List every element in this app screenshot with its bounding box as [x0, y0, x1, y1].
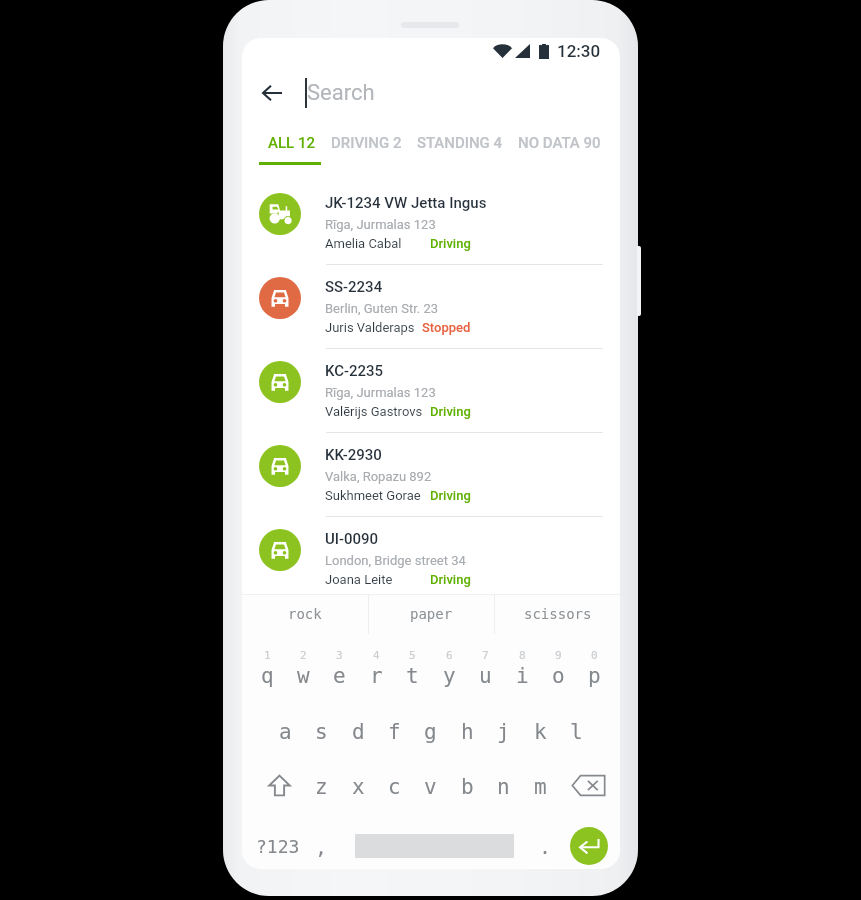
- staticText: Stopped: [422, 320, 471, 335]
- staticText: Valka, Ropazu 892: [325, 469, 432, 484]
- staticText: t: [406, 664, 419, 688]
- staticText: f: [388, 720, 401, 744]
- staticText: 2: [300, 649, 307, 662]
- button[interactable]: SS-2234: [242, 273, 620, 357]
- button[interactable]: ALL 12: [268, 134, 316, 152]
- staticText: 5: [409, 649, 416, 662]
- button[interactable]: 5: [394, 640, 430, 696]
- staticText: Joana Leite: [325, 572, 393, 587]
- button[interactable]: z: [303, 764, 339, 810]
- staticText: 8: [519, 649, 526, 662]
- button[interactable]: NO DATA 90: [518, 134, 601, 152]
- button[interactable]: j: [485, 709, 521, 755]
- button[interactable]: scissors: [495, 594, 620, 634]
- button[interactable]: Back: [252, 73, 292, 113]
- button[interactable]: g: [412, 709, 448, 755]
- staticText: Driving: [430, 572, 471, 587]
- button[interactable]: f: [376, 709, 412, 755]
- button[interactable]: KC-2235: [242, 357, 620, 441]
- staticText: Search: [307, 80, 375, 106]
- button[interactable]: v: [412, 764, 448, 810]
- button[interactable]: 8: [504, 640, 540, 696]
- staticText: Sukhmeet Gorae: [325, 488, 421, 503]
- button[interactable]: Shift: [261, 762, 297, 808]
- staticText: 7: [482, 649, 489, 662]
- button[interactable]: Symbols: [252, 826, 304, 866]
- staticText: r: [370, 664, 383, 688]
- button[interactable]: 9: [540, 640, 576, 696]
- button[interactable]: Enter: [560, 826, 618, 866]
- staticText: Amelia Cabal: [325, 236, 402, 251]
- button[interactable]: m: [522, 764, 558, 810]
- staticText: o: [552, 664, 565, 688]
- staticText: q: [261, 664, 274, 688]
- button[interactable]: d: [340, 709, 376, 755]
- button[interactable]: 1: [249, 640, 285, 696]
- button[interactable]: JK-1234 VW Jetta Ingus: [242, 189, 620, 273]
- staticText: n: [497, 775, 510, 799]
- button[interactable]: 3: [321, 640, 357, 696]
- button[interactable]: KK-2930: [242, 441, 620, 525]
- staticText: j: [497, 720, 510, 744]
- staticText: ?123: [256, 836, 300, 857]
- button[interactable]: 4: [358, 640, 394, 696]
- button[interactable]: 7: [467, 640, 503, 696]
- staticText: SS-2234: [325, 278, 383, 296]
- staticText: London, Bridge street 34: [325, 553, 466, 568]
- button[interactable]: .: [530, 826, 560, 866]
- button[interactable]: rock: [242, 594, 368, 634]
- staticText: e: [333, 664, 346, 688]
- staticText: k: [534, 720, 547, 744]
- staticText: p: [588, 664, 601, 688]
- staticText: 9: [555, 649, 562, 662]
- button[interactable]: STANDING 4: [417, 134, 503, 152]
- staticText: ALL 12: [268, 134, 316, 152]
- staticText: NO DATA 90: [518, 134, 601, 152]
- staticText: DRIVING 2: [331, 134, 402, 152]
- staticText: d: [352, 720, 365, 744]
- button[interactable]: Space: [338, 826, 530, 866]
- button[interactable]: k: [522, 709, 558, 755]
- staticText: scissors: [524, 606, 592, 622]
- button[interactable]: ,: [304, 826, 338, 866]
- staticText: ,: [315, 835, 328, 858]
- staticText: Driving: [430, 488, 471, 503]
- staticText: 0: [591, 649, 598, 662]
- staticText: STANDING 4: [417, 134, 503, 152]
- staticText: g: [424, 720, 437, 744]
- staticText: 1: [264, 649, 271, 662]
- button[interactable]: 2: [285, 640, 321, 696]
- button[interactable]: x: [340, 764, 376, 810]
- staticText: KK-2930: [325, 446, 382, 464]
- staticText: Rīga, Jurmalas 123: [325, 385, 436, 400]
- staticText: paper: [410, 606, 453, 622]
- staticText: 6: [446, 649, 453, 662]
- staticText: Valērijs Gastrovs: [325, 404, 423, 419]
- button[interactable]: paper: [369, 594, 494, 634]
- button[interactable]: n: [485, 764, 521, 810]
- staticText: 4: [373, 649, 380, 662]
- button[interactable]: DRIVING 2: [331, 134, 402, 152]
- staticText: Berlin, Guten Str. 23: [325, 301, 439, 316]
- staticText: y: [443, 664, 456, 688]
- staticText: .: [539, 835, 552, 858]
- staticText: KC-2235: [325, 362, 384, 380]
- button[interactable]: c: [376, 764, 412, 810]
- staticText: Rīga, Jurmalas 123: [325, 217, 436, 232]
- button[interactable]: 0: [576, 640, 612, 696]
- button[interactable]: 6: [431, 640, 467, 696]
- button[interactable]: h: [449, 709, 485, 755]
- button[interactable]: Backspace: [562, 762, 614, 808]
- staticText: u: [479, 664, 492, 688]
- staticText: h: [461, 720, 474, 744]
- button[interactable]: s: [303, 709, 339, 755]
- staticText: rock: [288, 606, 322, 622]
- staticText: m: [534, 775, 547, 799]
- button[interactable]: a: [267, 709, 303, 755]
- button[interactable]: UI-0090: [242, 525, 620, 609]
- staticText: Driving: [430, 236, 471, 251]
- staticText: UI-0090: [325, 530, 379, 548]
- button[interactable]: b: [449, 764, 485, 810]
- staticText: w: [297, 664, 310, 688]
- button[interactable]: l: [558, 709, 594, 755]
